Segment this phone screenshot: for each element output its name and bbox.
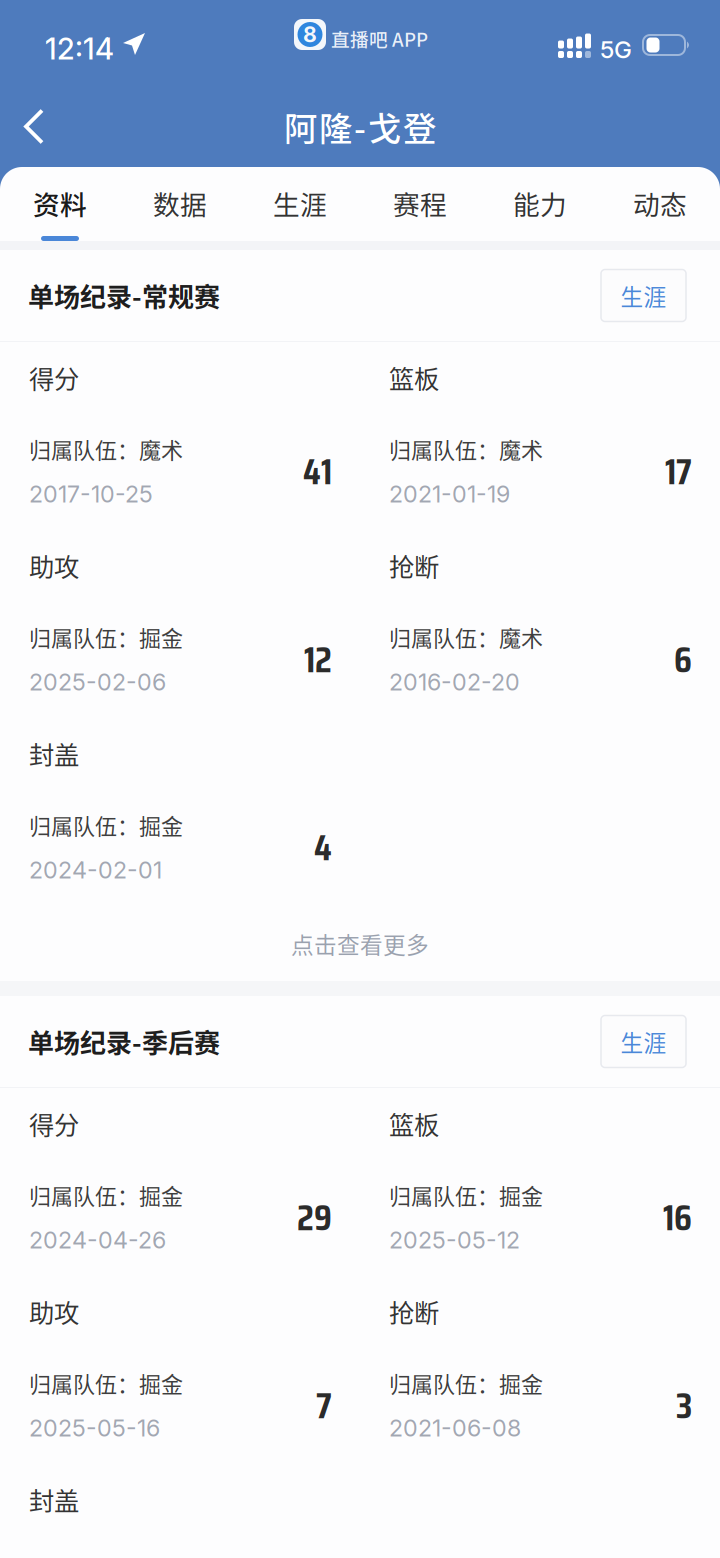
staticText: 归属队伍：掘金	[29, 621, 183, 653]
button[interactable]: 赛程	[360, 167, 480, 241]
staticText: 29	[297, 1188, 332, 1247]
staticText: 能力	[513, 184, 567, 222]
staticText: 助攻	[29, 1293, 79, 1330]
staticText: 17	[665, 442, 692, 501]
staticText: 2016-02-20	[389, 668, 520, 696]
button[interactable]: 生涯	[601, 269, 720, 321]
staticText: 41	[303, 442, 332, 501]
button[interactable]: 点击查看更多	[0, 906, 720, 981]
staticText: 6	[674, 630, 692, 689]
staticText: 助攻	[29, 547, 79, 584]
staticText: 12:14	[45, 31, 114, 66]
staticText: 2025-05-16	[29, 1414, 160, 1442]
staticText: 2021-01-19	[389, 480, 510, 508]
staticText: 12	[304, 630, 332, 689]
staticText: 5G	[600, 35, 632, 64]
button[interactable]: 动态	[600, 167, 720, 241]
staticText: 阿隆-戈登	[284, 102, 436, 151]
button[interactable]: 返回	[0, 88, 72, 164]
staticText: 2025-02-06	[29, 668, 166, 696]
staticText: 2021-06-08	[389, 1414, 521, 1442]
staticText: 生涯	[620, 1025, 666, 1058]
button[interactable]: 生涯	[240, 167, 360, 241]
staticText: 封盖	[29, 1481, 79, 1518]
staticText: 资料	[33, 184, 87, 222]
staticText: 归属队伍：掘金	[29, 809, 183, 841]
staticText: 生涯	[273, 184, 327, 222]
staticText: 4	[314, 818, 332, 877]
staticText: 归属队伍：魔术	[389, 433, 543, 465]
staticText: 7	[316, 1376, 332, 1435]
staticText: 抢断	[389, 547, 439, 584]
staticText: 点击查看更多	[291, 927, 429, 960]
staticText: 篮板	[389, 359, 439, 396]
button[interactable]: 能力	[480, 167, 600, 241]
staticText: 封盖	[29, 735, 79, 772]
staticText: 得分	[29, 1105, 79, 1142]
staticText: 生涯	[620, 279, 666, 312]
staticText: 2024-04-26	[29, 1226, 166, 1254]
staticText: 抢断	[389, 1293, 439, 1330]
staticText: 动态	[633, 184, 687, 222]
button[interactable]: 数据	[120, 167, 240, 241]
staticText: 归属队伍：魔术	[389, 621, 543, 653]
button[interactable]: 生涯	[601, 1015, 720, 1067]
staticText: 得分	[29, 359, 79, 396]
staticText: 单场纪录-常规赛	[28, 277, 220, 314]
staticText: 归属队伍：掘金	[389, 1367, 543, 1399]
staticText: 单场纪录-季后赛	[28, 1023, 220, 1060]
staticText: 3	[676, 1376, 692, 1435]
staticText: 归属队伍：魔术	[29, 433, 183, 465]
button[interactable]: 资料	[0, 167, 120, 241]
staticText: 2025-05-12	[389, 1226, 520, 1254]
staticText: 16	[663, 1188, 692, 1247]
staticText: 8	[303, 22, 317, 47]
staticText: 赛程	[393, 184, 447, 222]
staticText: 2024-02-01	[29, 856, 162, 884]
staticText: 归属队伍：掘金	[389, 1179, 543, 1211]
staticText: 数据	[153, 184, 207, 222]
staticText: 直播吧 APP	[331, 25, 428, 52]
staticText: 归属队伍：掘金	[29, 1179, 183, 1211]
staticText: 归属队伍：掘金	[29, 1367, 183, 1399]
staticText: 篮板	[389, 1105, 439, 1142]
staticText: 2017-10-25	[29, 480, 153, 508]
